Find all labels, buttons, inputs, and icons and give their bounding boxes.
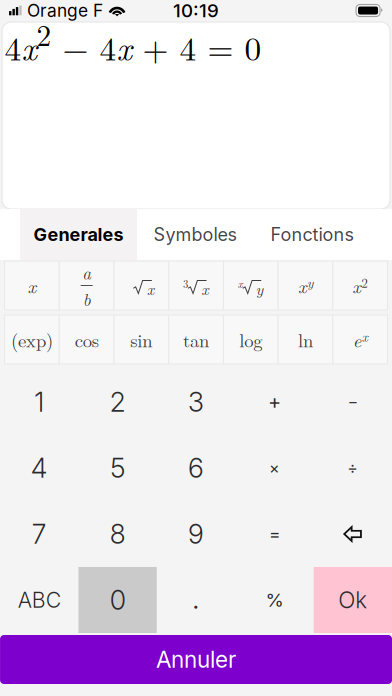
staticText: 3 [188, 386, 204, 418]
button[interactable]: xy [278, 261, 333, 310]
button[interactable]: log [223, 315, 278, 364]
staticText: 2 [110, 386, 126, 418]
button[interactable]: 5 [78, 435, 157, 501]
staticText: 1 [34, 386, 44, 418]
staticText: . [193, 585, 200, 614]
staticText: 3 [183, 276, 188, 291]
staticText: 5 [110, 452, 125, 484]
staticText: ln [298, 326, 313, 353]
staticText: y [256, 277, 264, 300]
button[interactable]: 6 [157, 435, 235, 501]
button[interactable]: a [59, 261, 114, 310]
button[interactable]: y [223, 261, 278, 310]
button[interactable]: (exp) [5, 315, 59, 364]
button[interactable]: Delete [314, 501, 392, 567]
staticText: ÷ [347, 458, 358, 478]
button[interactable]: Fonctions [254, 209, 371, 260]
staticText: Generales [34, 224, 124, 245]
staticText: – [349, 393, 356, 411]
staticText: x2 [352, 273, 368, 298]
button[interactable]: 2 [78, 369, 157, 435]
staticText: x [201, 277, 208, 300]
button[interactable]: 4 [0, 435, 78, 501]
staticText: 4x2 − 4x + 4 = 0 [5, 13, 262, 70]
button[interactable]: 3 [157, 369, 235, 435]
staticText: x [147, 277, 154, 300]
staticText: a [82, 260, 91, 284]
staticText: sin [130, 326, 152, 353]
staticText: × [269, 458, 280, 478]
staticText: ex [353, 327, 368, 352]
staticText: cos [75, 326, 99, 353]
staticText: log [239, 326, 262, 353]
staticText: Ok [338, 586, 367, 614]
staticText: x [238, 276, 243, 291]
button[interactable]: Generales [20, 209, 137, 260]
button[interactable]: 9 [157, 501, 235, 567]
staticText: Fonctions [271, 224, 355, 245]
button[interactable]: × [235, 435, 314, 501]
button[interactable]: ex [333, 315, 387, 364]
button[interactable]: Annuler [0, 635, 392, 684]
staticText: (exp) [11, 326, 53, 353]
button[interactable]: x [5, 261, 59, 310]
staticText: 7 [32, 518, 47, 550]
button[interactable]: tan [169, 315, 223, 364]
staticText: = [269, 523, 280, 544]
button[interactable]: x [169, 261, 223, 310]
staticText: 6 [188, 452, 204, 484]
staticText: ABC [18, 587, 61, 613]
staticText: 0 [110, 584, 126, 616]
staticText: 4 [31, 452, 48, 484]
button[interactable]: % [235, 567, 314, 633]
button[interactable]: 0 [78, 567, 157, 633]
button[interactable]: cos [59, 315, 114, 364]
staticText: 10:19 [173, 0, 219, 22]
staticText: Annuler [156, 646, 236, 673]
button[interactable]: x [114, 261, 169, 310]
staticText: 8 [110, 518, 126, 550]
button[interactable]: ln [278, 315, 333, 364]
button[interactable]: 8 [78, 501, 157, 567]
staticText: Orange F [27, 0, 103, 21]
staticText: tan [183, 326, 209, 353]
button[interactable]: + [235, 369, 314, 435]
button[interactable]: 7 [0, 501, 78, 567]
staticText: Symboles [154, 224, 238, 245]
staticText: % [265, 589, 283, 611]
button[interactable]: Symboles [137, 209, 254, 260]
button[interactable]: = [235, 501, 314, 567]
staticText: xy [298, 273, 313, 298]
button[interactable]: x2 [333, 261, 387, 310]
button[interactable]: ABC [0, 567, 78, 633]
staticText: x [27, 272, 36, 299]
button[interactable]: sin [114, 315, 169, 364]
button[interactable]: 1 [0, 369, 78, 435]
staticText: + [268, 390, 281, 414]
button[interactable]: . [157, 567, 235, 633]
staticText: b [83, 286, 91, 311]
staticText: 9 [188, 518, 204, 550]
button[interactable]: Ok [314, 567, 392, 633]
button[interactable]: ÷ [314, 435, 392, 501]
button[interactable]: – [314, 369, 392, 435]
